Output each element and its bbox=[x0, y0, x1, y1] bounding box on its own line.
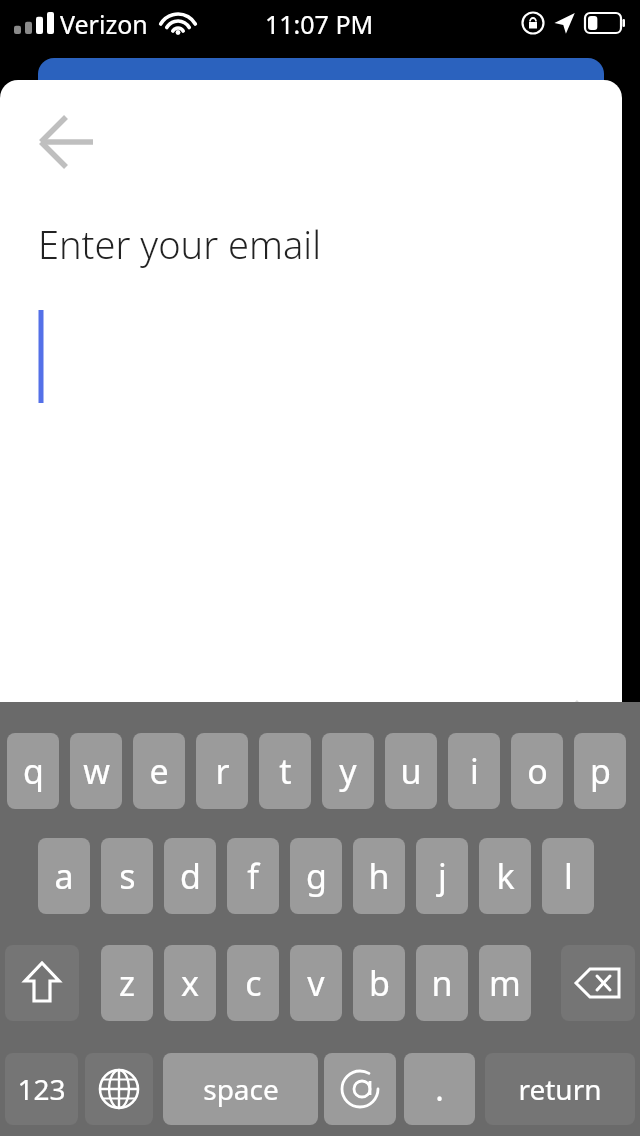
button[interactable]: f bbox=[227, 838, 279, 914]
staticText: j bbox=[438, 853, 447, 899]
staticText: y bbox=[339, 748, 357, 794]
button[interactable]: l bbox=[542, 838, 594, 914]
staticText: space bbox=[203, 1070, 279, 1108]
button[interactable]: j bbox=[416, 838, 468, 914]
button[interactable]: u bbox=[385, 733, 437, 809]
staticText: . bbox=[435, 1067, 444, 1111]
staticText: q bbox=[23, 748, 44, 794]
button[interactable]: c bbox=[227, 945, 279, 1021]
button[interactable]: Back bbox=[28, 110, 106, 174]
button[interactable]: r bbox=[196, 733, 248, 809]
staticText: w bbox=[83, 748, 110, 794]
staticText: k bbox=[496, 853, 515, 899]
button[interactable]: q bbox=[7, 733, 59, 809]
button[interactable]: w bbox=[70, 733, 122, 809]
staticText: s bbox=[119, 853, 136, 899]
staticText: u bbox=[400, 748, 422, 794]
staticText: a bbox=[54, 853, 74, 899]
button[interactable]: k bbox=[479, 838, 531, 914]
staticText: 11:07 PM bbox=[265, 7, 374, 41]
staticText: 123 bbox=[17, 1070, 66, 1108]
button[interactable]: a bbox=[38, 838, 90, 914]
button[interactable]: x bbox=[164, 945, 216, 1021]
staticText: d bbox=[180, 853, 201, 899]
button[interactable]: . bbox=[404, 1053, 475, 1125]
staticText: n bbox=[431, 960, 453, 1006]
staticText: r bbox=[215, 748, 230, 794]
staticText: g bbox=[306, 853, 327, 899]
button[interactable]: g bbox=[290, 838, 342, 914]
button[interactable]: n bbox=[416, 945, 468, 1021]
button[interactable]: b bbox=[353, 945, 405, 1021]
button[interactable]: At sign bbox=[324, 1053, 396, 1125]
staticText: i bbox=[470, 748, 479, 794]
button[interactable]: Change keyboard bbox=[85, 1053, 153, 1125]
staticText: o bbox=[527, 748, 548, 794]
button[interactable]: s bbox=[101, 838, 153, 914]
staticText: Verizon bbox=[60, 7, 148, 41]
button[interactable]: i bbox=[448, 733, 500, 809]
button[interactable]: t bbox=[259, 733, 311, 809]
button[interactable] bbox=[36, 305, 586, 415]
button[interactable]: 123 bbox=[5, 1053, 78, 1125]
staticText: Enter your email bbox=[38, 218, 321, 270]
staticText: c bbox=[245, 960, 262, 1006]
button[interactable]: p bbox=[574, 733, 626, 809]
staticText: f bbox=[247, 853, 259, 899]
staticText: b bbox=[369, 960, 390, 1006]
staticText: m bbox=[489, 960, 521, 1006]
staticText: p bbox=[590, 748, 611, 794]
button[interactable]: z bbox=[101, 945, 153, 1021]
staticText: z bbox=[119, 960, 135, 1006]
staticText: h bbox=[368, 853, 390, 899]
button[interactable]: Backspace bbox=[561, 945, 635, 1021]
button[interactable]: o bbox=[511, 733, 563, 809]
staticText: v bbox=[307, 960, 325, 1006]
staticText: return bbox=[518, 1070, 602, 1108]
button[interactable]: v bbox=[290, 945, 342, 1021]
button[interactable]: h bbox=[353, 838, 405, 914]
button[interactable]: e bbox=[133, 733, 185, 809]
staticText: t bbox=[279, 748, 292, 794]
button[interactable]: return bbox=[485, 1053, 635, 1125]
button[interactable]: m bbox=[479, 945, 531, 1021]
button[interactable]: space bbox=[163, 1053, 318, 1125]
staticText: l bbox=[564, 853, 573, 899]
button[interactable]: Shift bbox=[5, 945, 79, 1021]
staticText: e bbox=[149, 748, 169, 794]
staticText: x bbox=[181, 960, 199, 1006]
button[interactable]: d bbox=[164, 838, 216, 914]
button[interactable]: y bbox=[322, 733, 374, 809]
